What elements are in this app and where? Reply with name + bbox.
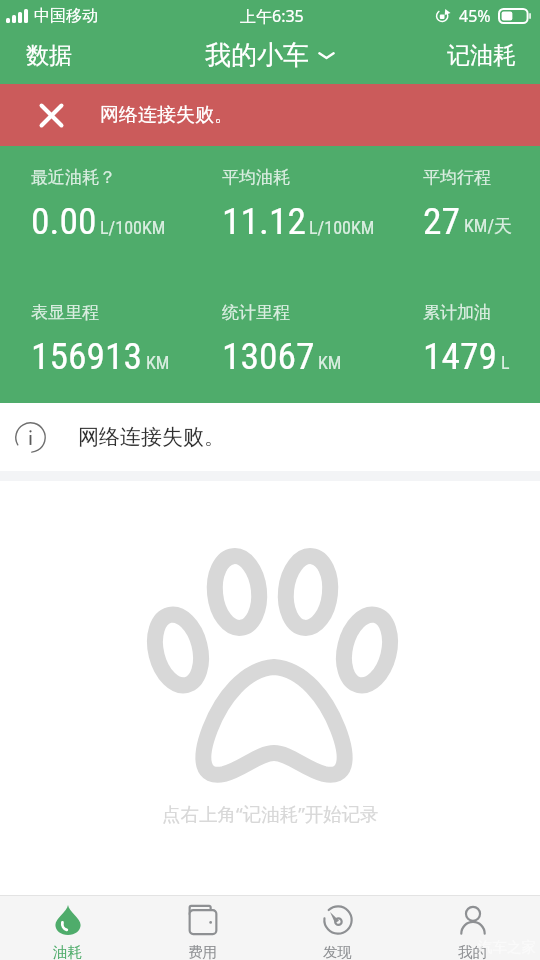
- staticText: 平均行程: [423, 167, 491, 188]
- button[interactable]: Dismiss error banner: [39, 103, 64, 128]
- button[interactable]: 网络连接失败。: [0, 403, 540, 471]
- staticText: 156913: [31, 334, 143, 378]
- staticText: 油耗: [53, 943, 82, 960]
- button[interactable]: 油耗: [0, 896, 135, 960]
- button[interactable]: 发现: [270, 896, 405, 960]
- staticText: 我的: [458, 943, 487, 960]
- staticText: 汽车之家: [478, 938, 536, 956]
- staticText: 45%: [459, 5, 491, 27]
- staticText: 我的小车: [205, 39, 309, 72]
- staticText: KM: [318, 352, 342, 373]
- button[interactable]: 记油耗: [423, 32, 540, 84]
- staticText: L/100KM: [100, 217, 166, 238]
- staticText: 统计里程: [222, 302, 290, 323]
- staticText: KM/天: [464, 215, 513, 238]
- staticText: KM: [146, 352, 170, 373]
- staticText: 13067: [222, 334, 315, 378]
- button[interactable]: 数据: [0, 32, 98, 84]
- staticText: L/100KM: [309, 217, 375, 238]
- button[interactable]: 费用: [135, 896, 270, 960]
- staticText: 费用: [188, 943, 217, 960]
- staticText: 中国移动: [34, 6, 98, 26]
- staticText: 网络连接失败。: [78, 424, 225, 450]
- staticText: L: [501, 352, 510, 373]
- staticText: 点右上角“记油耗”开始记录: [162, 801, 379, 826]
- staticText: 发现: [323, 943, 352, 960]
- staticText: 27: [423, 199, 461, 243]
- staticText: 数据: [26, 41, 72, 70]
- staticText: 上午6:35: [240, 5, 304, 27]
- staticText: 11.12: [222, 199, 306, 243]
- staticText: 1479: [423, 334, 498, 378]
- staticText: 表显里程: [31, 302, 99, 323]
- staticText: 记油耗: [447, 41, 516, 70]
- staticText: 最近油耗？: [31, 167, 116, 188]
- button[interactable]: 我的小车: [195, 32, 345, 84]
- staticText: 0.00: [31, 199, 97, 243]
- button[interactable]: 我的: [405, 896, 540, 960]
- staticText: 网络连接失败。: [100, 103, 233, 127]
- staticText: 平均油耗: [222, 167, 290, 188]
- staticText: 累计加油: [423, 302, 491, 323]
- button[interactable]: Dismiss error banner: [0, 84, 540, 146]
